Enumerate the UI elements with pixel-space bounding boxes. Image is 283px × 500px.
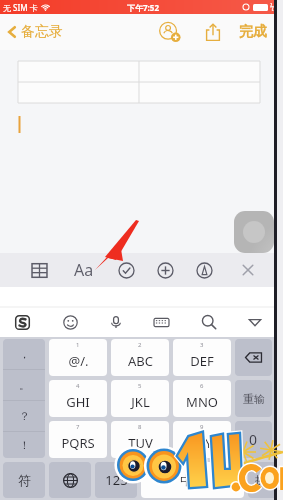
button[interactable]: ？ <box>3 401 45 431</box>
staticText: 7 <box>76 423 80 431</box>
button[interactable]: 4 <box>49 380 107 417</box>
staticText: 下午7:52 <box>127 2 159 13</box>
button[interactable]: Share <box>203 22 223 42</box>
staticText: ϟ <box>270 2 274 12</box>
staticText: @/. <box>68 352 89 370</box>
staticText: ！ <box>19 438 30 452</box>
button[interactable]: Add people <box>158 20 182 44</box>
button[interactable]: 0 <box>235 421 272 458</box>
button[interactable]: AssistiveTouch <box>234 211 274 253</box>
button[interactable]: Switch language <box>49 462 91 498</box>
staticText: 8 <box>138 423 142 431</box>
staticText: JKL <box>131 393 150 411</box>
staticText: 0 <box>249 430 258 449</box>
staticText: ABC <box>128 352 153 370</box>
staticText: 2 <box>138 341 142 349</box>
staticText: 123 <box>105 471 128 489</box>
button[interactable]: Attach <box>157 262 174 279</box>
staticText: GHI <box>66 393 90 411</box>
button[interactable]: ， <box>3 339 45 369</box>
button[interactable]: 7 <box>49 421 107 458</box>
button[interactable]: Emoji <box>63 315 78 330</box>
staticText: 无 SIM 卡 <box>3 2 38 13</box>
staticText: 中文 <box>180 472 206 488</box>
staticText: 3 <box>200 341 204 349</box>
button[interactable]: Hide keyboard <box>248 315 262 329</box>
staticText: Aa <box>74 259 94 281</box>
staticText: 重输 <box>243 392 265 406</box>
button[interactable]: 重输 <box>235 380 272 417</box>
button[interactable]: Voice input <box>108 314 124 330</box>
staticText: 6 <box>200 382 204 390</box>
button[interactable]: ！ <box>3 432 45 458</box>
button[interactable]: Markup <box>196 262 213 279</box>
button[interactable]: Checklist <box>118 262 135 279</box>
button[interactable]: 8 <box>111 421 169 458</box>
button[interactable]: Table <box>31 262 48 279</box>
staticText: 换行 <box>255 473 277 487</box>
button[interactable]: 1 <box>49 339 107 376</box>
staticText: 5 <box>138 382 142 390</box>
staticText: MNO <box>186 393 218 411</box>
button[interactable]: 5 <box>111 380 169 417</box>
button[interactable]: 6 <box>173 380 231 417</box>
button[interactable]: 9 <box>173 421 231 458</box>
button[interactable]: 备忘录 <box>5 23 63 41</box>
button[interactable]: Backspace <box>235 339 272 376</box>
staticText: DEF <box>190 352 214 370</box>
staticText: 符 <box>18 472 31 488</box>
button[interactable]: 换行 <box>248 462 283 498</box>
button[interactable]: 符 <box>3 462 45 498</box>
staticText: PQRS <box>61 434 95 452</box>
button[interactable]: Search <box>201 314 217 330</box>
staticText: ？ <box>19 409 30 423</box>
button[interactable]: Sogou input method <box>14 314 31 331</box>
button[interactable]: 完成 <box>239 23 267 41</box>
staticText: 9 <box>200 423 204 431</box>
staticText: 备忘录 <box>21 23 63 41</box>
button[interactable]: Aa <box>74 259 94 281</box>
staticText: 4 <box>76 382 80 390</box>
button[interactable]: 123 <box>95 462 137 498</box>
staticText: ， <box>19 347 30 361</box>
button[interactable]: 2 <box>111 339 169 376</box>
button[interactable]: 3 <box>173 339 231 376</box>
staticText: 。 <box>19 378 30 392</box>
button[interactable]: Keyboard layout <box>153 314 170 331</box>
staticText: 1 <box>76 341 80 349</box>
button[interactable]: Close keyboard <box>240 262 256 278</box>
staticText: WXYZ <box>185 434 220 452</box>
staticText: TUV <box>128 434 153 452</box>
button[interactable]: 中文 <box>141 462 244 498</box>
